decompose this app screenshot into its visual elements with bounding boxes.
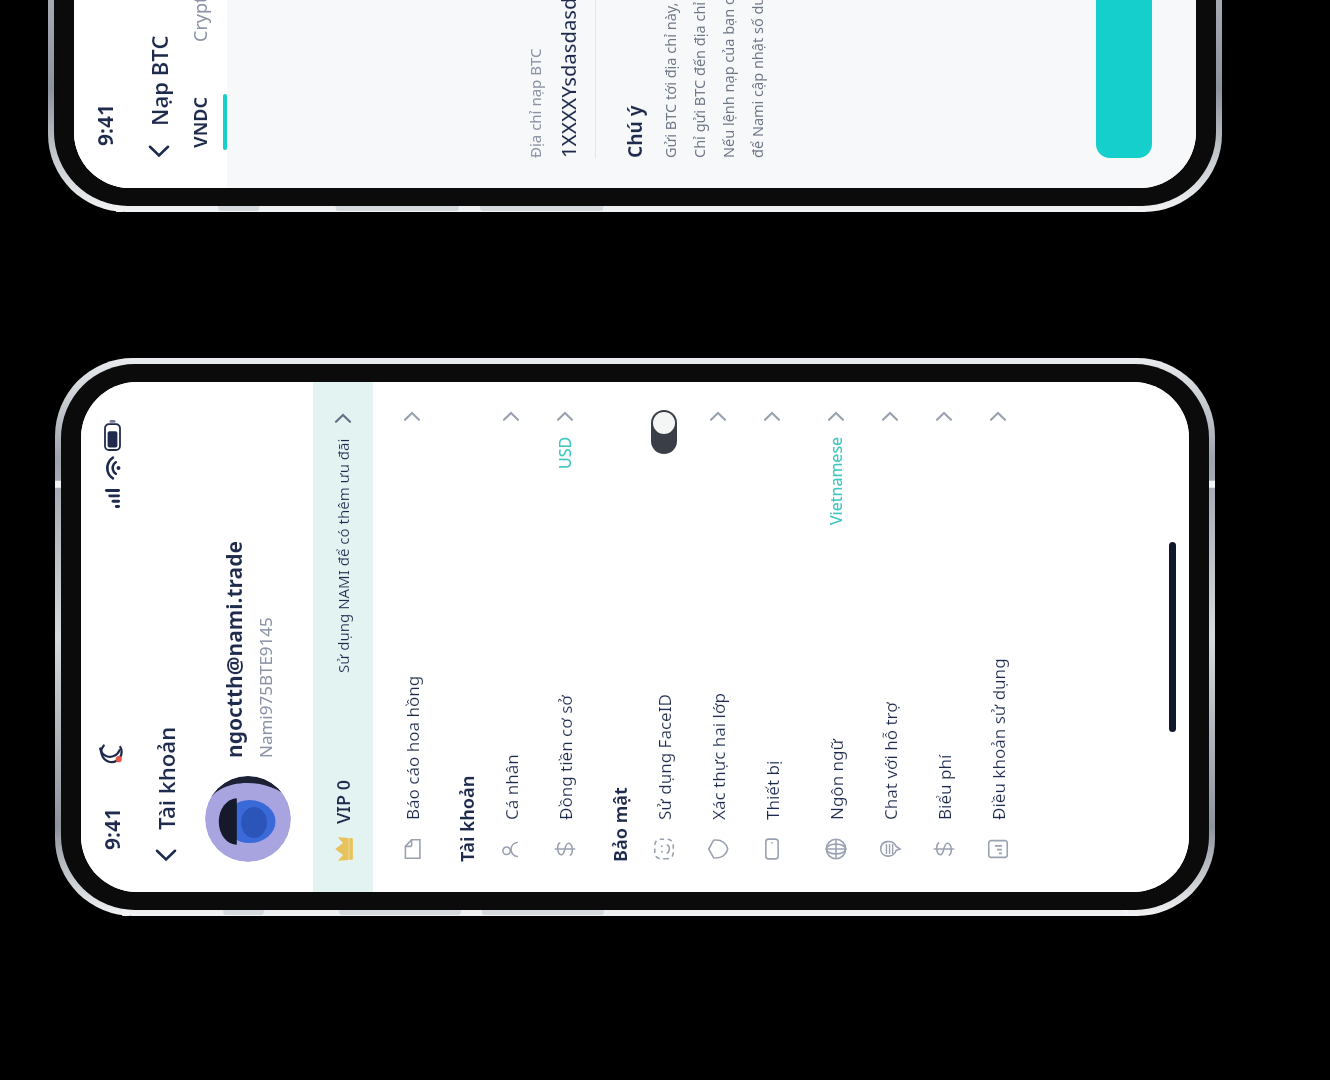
- button[interactable]: Xác thực hai lớp: [691, 382, 745, 892]
- button[interactable]: Back: [146, 834, 186, 874]
- button[interactable]: Báo cáo hoa hồng: [385, 382, 439, 892]
- staticText: Bảo mật: [608, 787, 633, 862]
- button[interactable]: 1XXXXYsdasdasdasf...: [553, 0, 583, 158]
- button[interactable]: ngoctth@nami.trade: [195, 382, 313, 892]
- staticText: Sử dụng NAMI để có thêm ưu đãi: [333, 438, 353, 673]
- button[interactable]: Ngôn ngữ: [809, 382, 863, 892]
- staticText: VIP 0: [331, 779, 356, 824]
- button[interactable]: Toggle Sử dụng FaceID: [651, 410, 677, 454]
- button[interactable]: Sử dụng FaceID: [637, 382, 691, 892]
- staticText: Báo cáo hoa hồng: [401, 424, 424, 820]
- staticText: Crypto: [188, 0, 213, 42]
- staticText: Chỉ gửi BTC đến địa chỉ n: [689, 0, 709, 158]
- button[interactable]: VNDC: [188, 90, 227, 154]
- staticText: Điều khoản sử dụng: [987, 424, 1010, 820]
- staticText: Xác thực hai lớp: [707, 424, 730, 820]
- button[interactable]: Thiết bị: [745, 382, 799, 892]
- button[interactable]: Đẩy: [1096, 0, 1152, 158]
- staticText: 9:41: [98, 808, 127, 850]
- staticText: Tài khoản: [151, 726, 181, 830]
- staticText: Chat với hỗ trợ: [879, 424, 902, 820]
- staticText: để Nami cập nhật số dư: [747, 0, 767, 158]
- staticText: Tài khoản: [455, 775, 480, 862]
- staticText: Sử dụng FaceID: [653, 454, 676, 820]
- staticText: VNDC: [188, 96, 213, 148]
- staticText: Vietnamese: [825, 436, 847, 525]
- staticText: 9:41: [91, 104, 120, 146]
- staticText: Nami975BTE9145: [254, 617, 277, 758]
- staticText: ngoctth@nami.trade: [220, 541, 249, 758]
- staticText: Nạp BTC: [144, 35, 174, 126]
- button[interactable]: Back: [139, 130, 179, 170]
- staticText: Nếu lệnh nạp của bạn ch: [718, 0, 738, 158]
- staticText: Gửi BTC tới địa chỉ này, các: [660, 0, 680, 158]
- button[interactable]: Cá nhân: [484, 382, 538, 892]
- staticText: Cá nhân: [500, 424, 523, 820]
- staticText: USD: [554, 436, 576, 469]
- button[interactable]: Biểu phí: [917, 382, 971, 892]
- staticText: Đồng tiền cơ sở: [554, 469, 577, 820]
- button[interactable]: Chat với hỗ trợ: [863, 382, 917, 892]
- staticText: Ngôn ngữ: [825, 525, 848, 820]
- staticText: Địa chỉ nạp BTC: [525, 48, 545, 158]
- staticText: 1XXXXYsdasdasdasf...: [555, 0, 582, 158]
- staticText: Chú ý: [622, 105, 648, 158]
- staticText: Thiết bị: [761, 424, 784, 820]
- button[interactable]: Đồng tiền cơ sở: [538, 382, 592, 892]
- button[interactable]: VIP 0: [313, 382, 373, 892]
- button[interactable]: Crypto: [188, 0, 227, 46]
- button[interactable]: Điều khoản sử dụng: [971, 382, 1025, 892]
- staticText: Biểu phí: [933, 424, 956, 820]
